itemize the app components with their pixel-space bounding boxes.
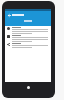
button[interactable] (5, 34, 51, 42)
button[interactable]: Back (7, 13, 11, 17)
button[interactable] (5, 26, 51, 34)
button[interactable] (5, 42, 51, 48)
